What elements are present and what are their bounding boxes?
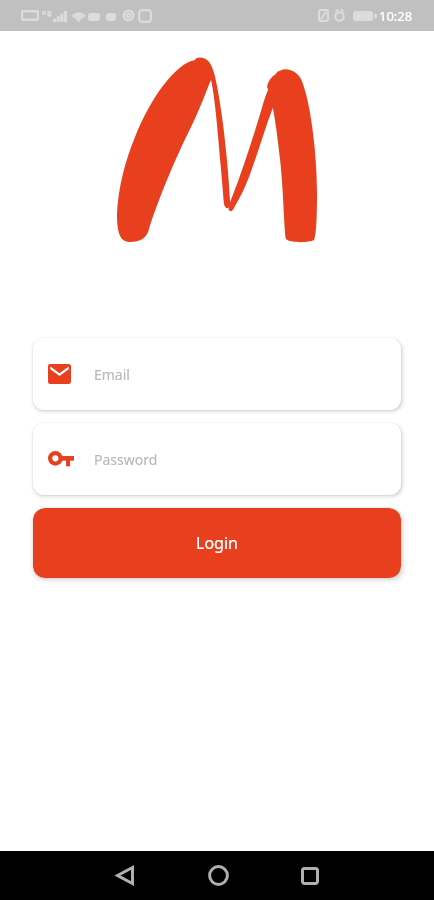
staticText: 10:28 [379, 7, 413, 25]
button[interactable]: Home [186, 851, 250, 900]
button[interactable]: Email [33, 338, 401, 410]
button[interactable]: Login [33, 508, 401, 578]
button[interactable]: Password [33, 423, 401, 495]
button[interactable]: Recent apps [278, 851, 342, 900]
staticText: Password [94, 450, 158, 469]
button[interactable]: Back [93, 851, 157, 900]
staticText: Email [94, 365, 130, 384]
staticText: Login [196, 532, 238, 554]
